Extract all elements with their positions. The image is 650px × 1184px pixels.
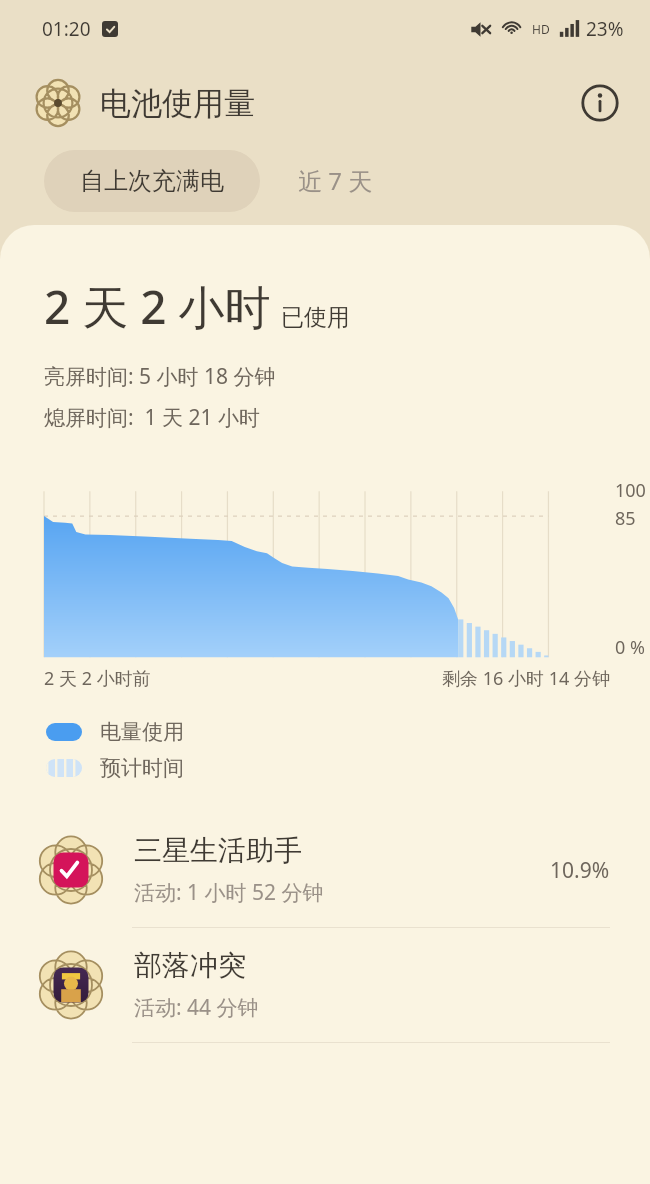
staticText: 部落冲突: [134, 948, 246, 983]
staticText: 活动: 44 分钟: [134, 993, 259, 1022]
staticText: 0 %: [615, 635, 645, 660]
staticText: 活动: 1 小时 52 分钟: [134, 878, 324, 907]
staticText: 三星生活助手: [134, 833, 302, 868]
button[interactable]: 近 7 天: [260, 148, 411, 213]
staticText: 近 7 天: [298, 164, 373, 197]
staticText: 电池使用量: [100, 84, 255, 123]
staticText: 2 天 2 小时前: [44, 666, 151, 691]
staticText: 23%: [586, 16, 624, 42]
staticText: 自上次充满电: [80, 166, 224, 196]
button[interactable]: Information: [576, 79, 624, 127]
staticText: 预计时间: [100, 755, 184, 781]
staticText: 10.9%: [550, 856, 610, 885]
staticText: 熄屏时间: 1 天 21 小时: [44, 403, 260, 432]
staticText: 2 天 2 小时: [44, 275, 271, 338]
staticText: 已使用: [281, 303, 350, 332]
button[interactable]: 自上次充满电: [44, 150, 260, 212]
staticText: 01:20: [42, 16, 91, 42]
staticText: 100: [615, 478, 646, 503]
staticText: 85: [615, 506, 636, 531]
staticText: 电量使用: [100, 719, 184, 745]
staticText: HD: [532, 21, 550, 37]
button[interactable]: 三星生活助手: [0, 813, 650, 927]
staticText: 亮屏时间: 5 小时 18 分钟: [44, 362, 276, 391]
staticText: 剩余 16 小时 14 分钟: [442, 666, 610, 691]
button[interactable]: 部落冲突: [0, 928, 650, 1042]
